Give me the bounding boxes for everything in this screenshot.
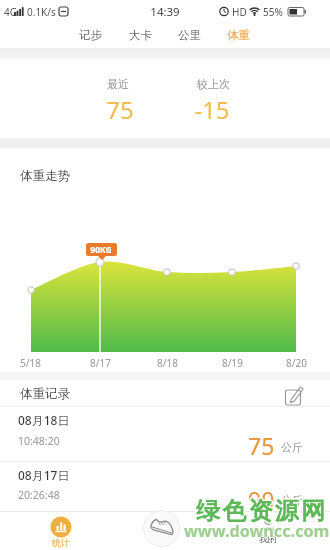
staticText: 0.1K/s — [27, 5, 56, 19]
staticText: 55% — [263, 5, 283, 19]
staticText: 75 — [106, 93, 134, 126]
staticText: 体重记录 — [20, 386, 70, 402]
staticText: 8/20 — [286, 356, 307, 370]
staticText: 较上次 — [197, 77, 230, 91]
staticText: 08月18日 — [18, 412, 70, 428]
staticText: 绿色资源网 — [194, 497, 325, 527]
staticText: www.downcc.com — [184, 519, 330, 541]
button[interactable] — [243, 512, 293, 550]
staticText: 绿色资源网 — [196, 496, 327, 526]
staticText: 大卡 — [129, 28, 152, 42]
button[interactable] — [0, 461, 330, 511]
staticText: 绿色资源网 — [196, 497, 327, 527]
staticText: 4G — [4, 5, 17, 19]
button[interactable]: 大卡 — [0, 0, 52, 14]
staticText: www.downcc.com — [184, 520, 330, 542]
staticText: HD — [232, 5, 247, 19]
button[interactable]: 记步 — [0, 0, 52, 14]
button[interactable]: 统计 — [36, 512, 86, 550]
staticText: 90 — [248, 484, 275, 515]
button[interactable] — [143, 510, 180, 547]
button[interactable]: 公里 — [0, 0, 52, 14]
staticText: 绿色资源网 — [195, 496, 326, 526]
staticText: 体重 — [227, 28, 250, 42]
button[interactable]: 体重 — [0, 0, 52, 14]
staticText: 14:39 — [150, 4, 180, 20]
staticText: 记步 — [79, 28, 102, 42]
staticText: www.downcc.com — [184, 521, 330, 543]
staticText: 90KG — [90, 244, 112, 256]
staticText: 公里 — [178, 28, 201, 42]
staticText: -15 — [194, 93, 230, 126]
staticText: 公斤 — [281, 440, 303, 454]
staticText: www.downcc.com — [183, 520, 329, 542]
button[interactable] — [0, 407, 330, 461]
staticText: 绿色资源网 — [194, 495, 325, 525]
staticText: 8/17 — [90, 356, 111, 370]
staticText: 统计 — [52, 537, 70, 548]
staticText: 绿色资源网 — [195, 497, 326, 527]
staticText: 我的 — [259, 533, 277, 544]
staticText: 体重走势 — [20, 168, 70, 184]
staticText: 20:26:48 — [18, 488, 60, 502]
button[interactable] — [282, 382, 306, 404]
staticText: 08月17日 — [18, 467, 70, 483]
staticText: www.downcc.com — [185, 520, 330, 542]
staticText: 绿色资源网 — [195, 495, 326, 525]
staticText: 绿色资源网 — [194, 496, 325, 526]
staticText: 绿色资源网 — [196, 495, 327, 525]
staticText: 10:48:20 — [18, 434, 60, 448]
staticText: 公斤 — [281, 493, 303, 507]
staticText: 最近 — [107, 77, 129, 91]
staticText: 75 — [248, 430, 275, 461]
staticText: 8/18 — [157, 356, 178, 370]
staticText: 5/18 — [20, 356, 41, 370]
staticText: 8/19 — [222, 356, 243, 370]
